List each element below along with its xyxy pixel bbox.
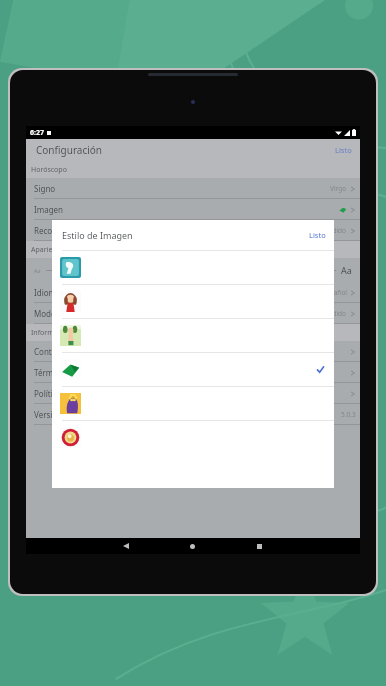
button[interactable]: Estilo 0 (52, 250, 334, 284)
staticText: Imagen (34, 204, 64, 215)
button[interactable]: Recent apps (226, 538, 293, 554)
staticText: Contáctenos (34, 346, 82, 357)
staticText: Modo Nocturno (34, 308, 94, 319)
staticText: Encendido (314, 309, 347, 318)
staticText: 6:27 (30, 128, 44, 138)
staticText: Configuración (36, 143, 103, 157)
staticText: Estilo de Imagen (62, 229, 133, 241)
button[interactable]: Estilo 1 (52, 284, 334, 318)
staticText: Encendido (314, 226, 347, 235)
button[interactable]: Signo (26, 178, 360, 199)
button[interactable]: Modo Nocturno (26, 303, 360, 324)
staticText: Signo (34, 183, 56, 194)
staticText: Apariencia (31, 245, 66, 255)
staticText: 5.0.3 (341, 410, 356, 419)
button[interactable]: Idioma (26, 282, 360, 303)
staticText: Términos de uso (34, 367, 97, 378)
staticText: Aa (34, 267, 41, 274)
staticText: Listo (309, 230, 326, 240)
button[interactable]: Estilo 2 (52, 318, 334, 352)
button[interactable]: Estilo 5 (52, 420, 334, 454)
staticText: Horóscopo (31, 165, 67, 175)
button[interactable]: Listo (327, 145, 360, 155)
button[interactable]: Listo (301, 230, 334, 240)
staticText: Español (323, 288, 347, 297)
staticText: Aa (341, 264, 352, 276)
button[interactable]: Política de privacidad (26, 383, 360, 404)
staticText: Política de privacidad (34, 388, 114, 399)
button[interactable]: Back (92, 538, 159, 554)
staticText: Listo (335, 145, 352, 155)
staticText: Información (31, 328, 72, 338)
button[interactable]: Recordatorio (26, 220, 360, 241)
button[interactable]: Estilo 3 (52, 352, 334, 386)
button[interactable]: Home (159, 538, 226, 554)
button[interactable]: Contáctenos (26, 341, 360, 362)
button[interactable]: Versión (26, 404, 360, 425)
staticText: Idioma (34, 287, 61, 298)
button[interactable]: Estilo 4 (52, 386, 334, 420)
button[interactable]: Términos de uso (26, 362, 360, 383)
staticText: Virgo (330, 184, 347, 193)
button[interactable]: Imagen (26, 199, 360, 220)
staticText: Recordatorio (34, 225, 83, 236)
staticText: Versión (34, 409, 63, 420)
